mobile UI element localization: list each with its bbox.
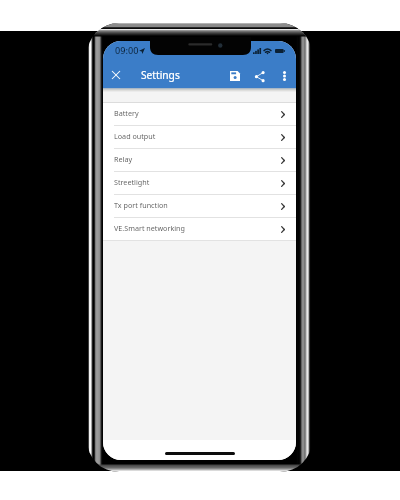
button[interactable]: VE.Smart networking bbox=[103, 218, 296, 241]
button[interactable]: Relay bbox=[103, 149, 296, 172]
staticText: Tx port function bbox=[114, 200, 168, 210]
staticText: Settings bbox=[141, 68, 180, 82]
staticText: Load output bbox=[114, 131, 156, 141]
staticText: VE.Smart networking bbox=[114, 223, 185, 233]
button[interactable]: Load output bbox=[103, 126, 296, 149]
button[interactable]: Share bbox=[248, 64, 272, 88]
button[interactable]: More options bbox=[272, 64, 296, 88]
staticText: 09:00 bbox=[115, 44, 139, 57]
button[interactable]: Battery bbox=[103, 103, 296, 126]
button[interactable]: Save bbox=[223, 64, 247, 88]
staticText: Streetlight bbox=[114, 177, 150, 187]
button[interactable]: Streetlight bbox=[103, 172, 296, 195]
button[interactable]: Tx port function bbox=[103, 195, 296, 218]
button[interactable]: Close bbox=[105, 64, 127, 86]
staticText: Relay bbox=[114, 154, 133, 164]
staticText: Battery bbox=[114, 108, 139, 118]
